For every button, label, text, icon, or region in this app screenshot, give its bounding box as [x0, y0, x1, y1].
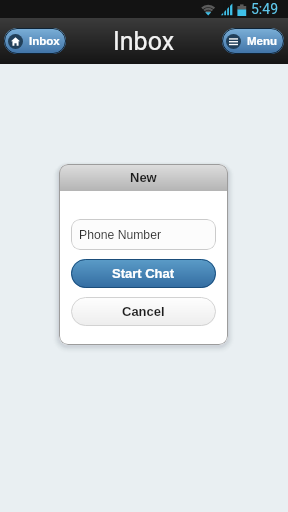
staticText: New: [130, 170, 157, 185]
button[interactable]: Phone Number: [71, 219, 216, 250]
button[interactable]: Cancel: [71, 297, 216, 326]
button[interactable]: Menu: [222, 28, 284, 54]
staticText: Cancel: [122, 304, 165, 319]
staticText: 5:49: [251, 1, 278, 17]
button[interactable]: Start Chat: [71, 259, 216, 288]
button[interactable]: Inbox: [4, 28, 66, 54]
staticText: Menu: [247, 35, 278, 48]
staticText: Start Chat: [112, 266, 175, 281]
staticText: Inbox: [29, 35, 60, 48]
staticText: Phone Number: [79, 228, 161, 242]
staticText: Inbox: [113, 27, 175, 56]
